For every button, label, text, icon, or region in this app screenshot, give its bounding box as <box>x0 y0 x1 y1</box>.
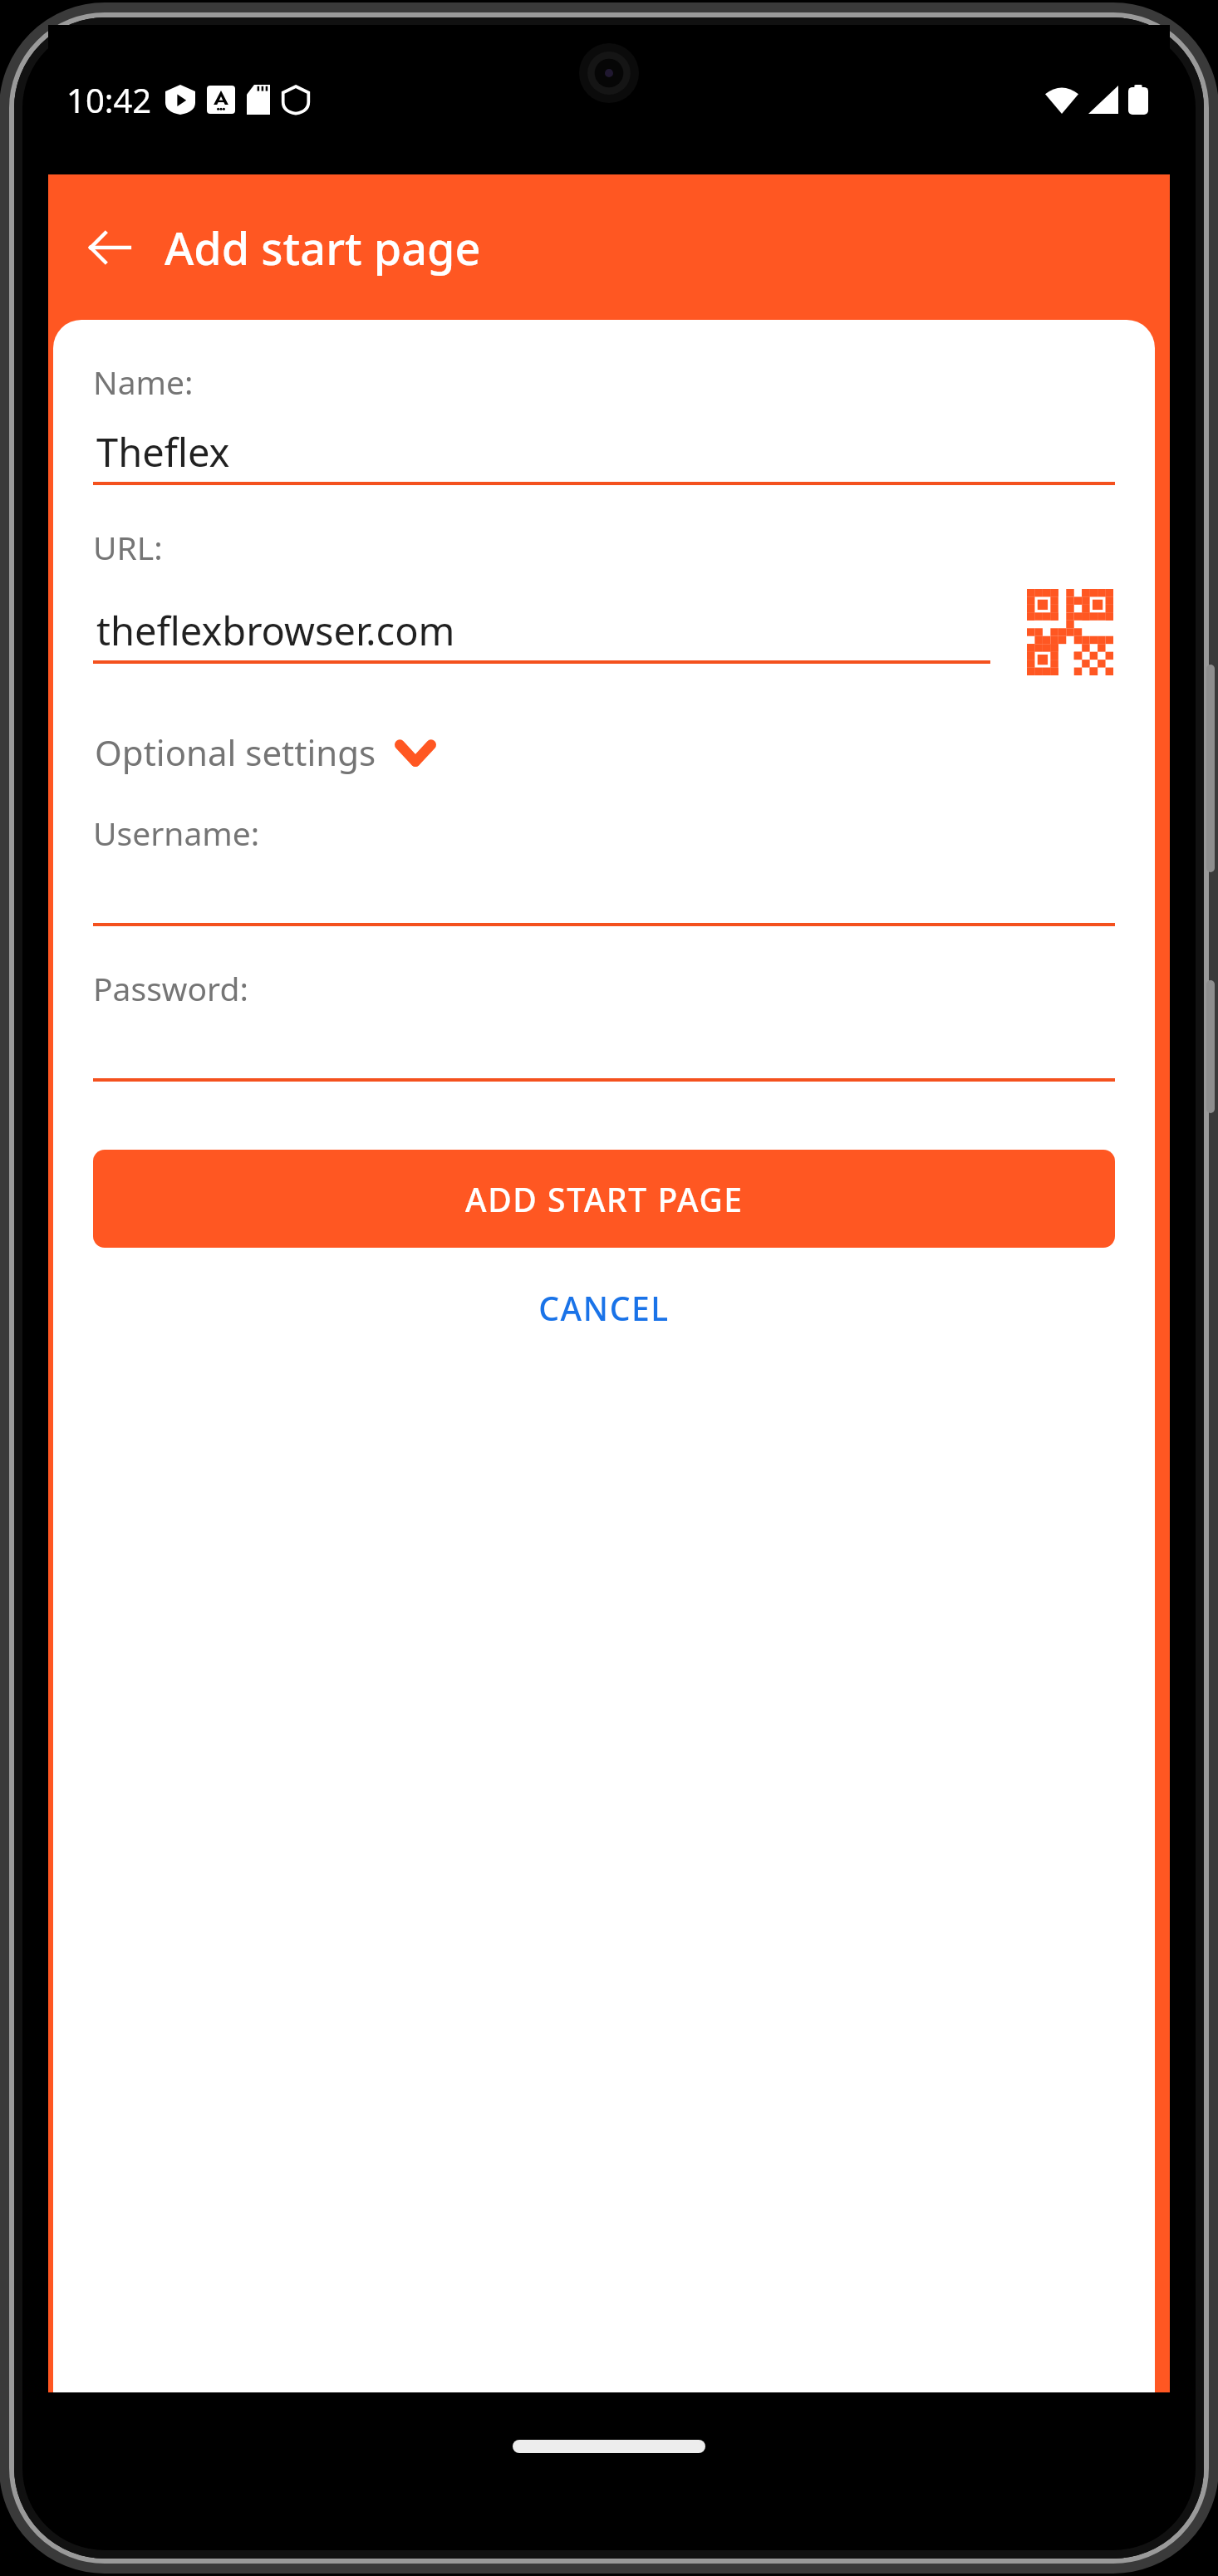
staticText: CANCEL <box>538 1286 670 1330</box>
staticText: Name: <box>93 360 194 404</box>
staticText: Username: <box>93 811 260 855</box>
button[interactable]: CANCEL <box>93 1263 1115 1352</box>
staticText: Optional settings <box>95 729 376 776</box>
staticText: ADD START PAGE <box>465 1177 744 1221</box>
button[interactable]: Theflex <box>93 422 1115 482</box>
button[interactable]: Scan QR code <box>1025 587 1115 677</box>
staticText: Theflex <box>96 425 230 478</box>
staticText: theflexbrowser.com <box>96 604 455 657</box>
staticText: URL: <box>93 525 163 569</box>
button[interactable]: Back <box>70 208 150 287</box>
staticText: 10:42 <box>66 77 152 122</box>
staticText: Add start page <box>165 217 481 278</box>
staticText: Password: <box>93 966 248 1010</box>
button[interactable]: Optional settings <box>93 722 438 783</box>
button[interactable]: ADD START PAGE <box>93 1150 1115 1248</box>
button[interactable]: theflexbrowser.com <box>93 601 990 660</box>
